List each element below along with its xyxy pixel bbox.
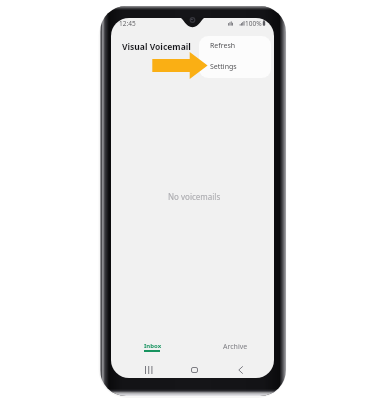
button[interactable]: Settings bbox=[199, 57, 271, 78]
button[interactable]: Home bbox=[175, 359, 213, 378]
staticText: 12:45 bbox=[119, 19, 136, 28]
staticText: Settings bbox=[210, 62, 237, 72]
button[interactable]: Inbox bbox=[124, 336, 180, 358]
button[interactable]: Refresh bbox=[199, 36, 271, 57]
staticText: Visual Voicemail bbox=[122, 41, 191, 53]
staticText: Inbox bbox=[144, 342, 162, 350]
staticText: No voicemails bbox=[168, 191, 221, 202]
staticText: Refresh bbox=[210, 41, 236, 51]
button[interactable]: Archive bbox=[207, 336, 263, 358]
staticText: 100% bbox=[245, 19, 262, 28]
button[interactable]: Back bbox=[221, 359, 259, 378]
staticText: Archive bbox=[223, 342, 248, 352]
button[interactable]: Recent apps bbox=[129, 359, 167, 378]
